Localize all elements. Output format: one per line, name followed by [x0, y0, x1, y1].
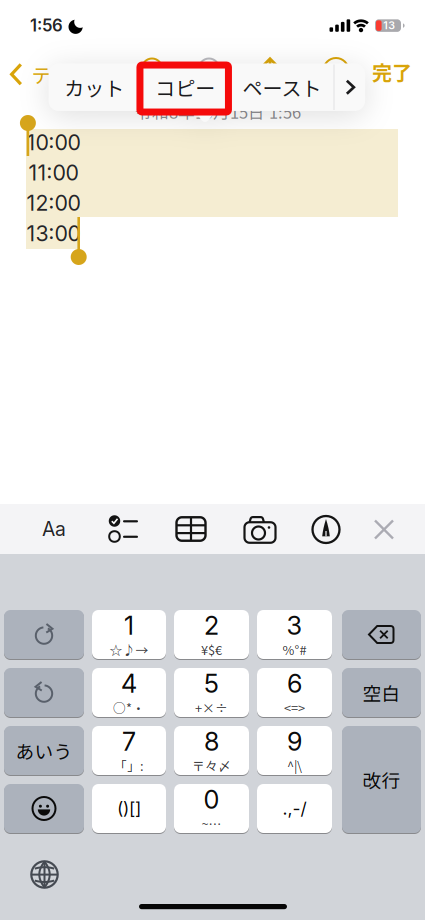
- button[interactable]: 1: [92, 610, 166, 659]
- button[interactable]: 8: [174, 726, 249, 775]
- staticText: 1: [124, 610, 134, 640]
- staticText: ○*・: [113, 698, 145, 716]
- button[interactable]: 表: [168, 507, 214, 551]
- staticText: 改行: [362, 766, 400, 793]
- button[interactable]: 戻る: [10, 54, 130, 94]
- button[interactable]: カット: [49, 64, 140, 111]
- button[interactable]: 完了: [362, 51, 422, 91]
- staticText: ^|\: [287, 756, 302, 774]
- button[interactable]: コピー: [140, 64, 230, 111]
- button[interactable]: .,-/: [257, 784, 332, 833]
- button[interactable]: やり直す: [194, 53, 224, 83]
- staticText: 4: [121, 668, 137, 698]
- button[interactable]: その他のメニュー: [333, 64, 367, 111]
- staticText: <=>: [284, 698, 305, 716]
- button[interactable]: 3: [257, 610, 332, 659]
- button[interactable]: 9: [257, 726, 332, 775]
- staticText: 空白: [362, 679, 400, 706]
- staticText: 完了: [372, 57, 412, 86]
- button[interactable]: ペースト: [232, 64, 331, 111]
- staticText: テキスト: [31, 60, 110, 88]
- button[interactable]: 絵文字: [4, 784, 84, 833]
- button[interactable]: 削除: [342, 610, 421, 659]
- staticText: 12:00: [26, 190, 80, 216]
- staticText: 「」:: [114, 756, 144, 774]
- staticText: 10:00: [26, 130, 80, 155]
- button[interactable]: 共有: [255, 51, 285, 85]
- button[interactable]: 改行: [342, 726, 421, 833]
- button[interactable]: 5: [174, 668, 249, 717]
- staticText: 13: [383, 19, 395, 32]
- button[interactable]: 空白: [342, 668, 421, 717]
- staticText: ~…: [201, 814, 221, 832]
- button[interactable]: 4: [92, 668, 166, 717]
- staticText: 11:00: [28, 160, 78, 185]
- staticText: 8: [204, 726, 219, 756]
- button[interactable]: かな: [4, 726, 84, 775]
- staticText: 5: [204, 668, 219, 698]
- button[interactable]: 取り消す: [4, 668, 84, 717]
- staticText: 9: [287, 726, 302, 756]
- button[interactable]: カメラ: [237, 507, 283, 551]
- button[interactable]: その他: [321, 55, 351, 85]
- button[interactable]: 2: [174, 610, 249, 659]
- staticText: ()[]: [117, 798, 141, 819]
- staticText: 〒々〆: [192, 756, 231, 774]
- staticText: コピー: [155, 73, 215, 101]
- staticText: +×÷: [195, 698, 228, 716]
- button[interactable]: 7: [92, 726, 166, 775]
- button[interactable]: 6: [257, 668, 332, 717]
- button[interactable]: キーボードを閉じる: [362, 507, 406, 551]
- staticText: あいう: [15, 737, 72, 764]
- staticText: 13:00: [26, 221, 80, 246]
- staticText: 6: [287, 668, 302, 698]
- staticText: 3: [286, 610, 302, 640]
- staticText: 1:56: [30, 16, 63, 35]
- button[interactable]: 取り消す: [137, 53, 167, 83]
- staticText: %°#: [282, 640, 306, 658]
- button[interactable]: やり直す: [4, 610, 84, 659]
- staticText: 令和8年10月15日 1:56: [135, 100, 301, 123]
- button[interactable]: チェックリスト: [97, 507, 143, 551]
- staticText: ペースト: [242, 73, 321, 101]
- staticText: 7: [122, 726, 136, 756]
- staticText: 0: [203, 784, 219, 814]
- button[interactable]: 0: [174, 784, 249, 833]
- button[interactable]: 次のキーボード: [22, 852, 66, 896]
- staticText: カット: [64, 73, 124, 101]
- staticText: .,-/: [282, 798, 306, 819]
- staticText: ☆♪→: [109, 640, 148, 658]
- button[interactable]: マークアップ: [303, 507, 349, 551]
- button[interactable]: ()[]: [92, 784, 166, 833]
- staticText: 2: [204, 610, 219, 640]
- staticText: Aa: [42, 518, 66, 540]
- staticText: ¥$€: [201, 640, 222, 658]
- button[interactable]: 書式: [31, 507, 77, 551]
